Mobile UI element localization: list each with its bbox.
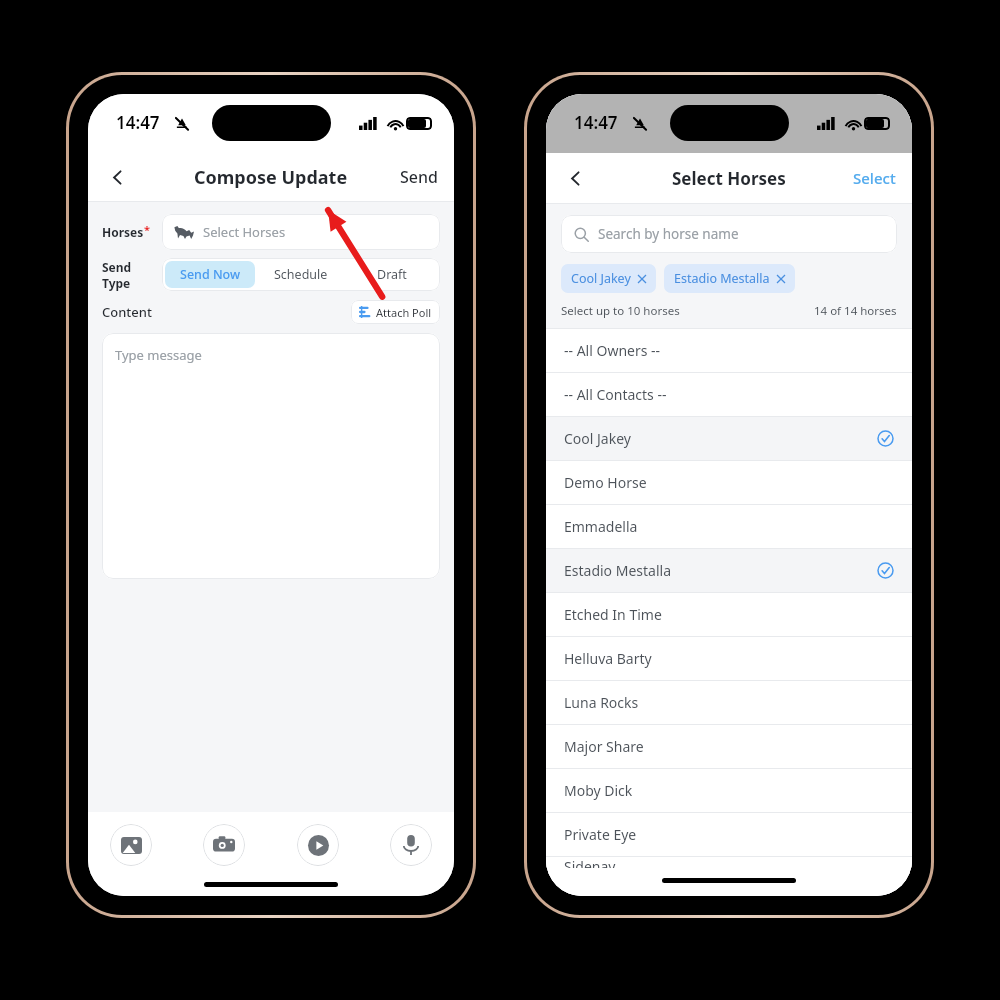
button[interactable]: Estadio Mestalla bbox=[546, 549, 912, 592]
button[interactable]: Etched In Time bbox=[546, 593, 912, 636]
button[interactable]: -- All Owners -- bbox=[546, 329, 912, 372]
staticText: Etched In Time bbox=[564, 605, 662, 624]
button[interactable]: Demo Horse bbox=[546, 461, 912, 504]
staticText: Send Type bbox=[102, 259, 162, 291]
button[interactable]: Emmadella bbox=[546, 505, 912, 548]
staticText: Sidenay bbox=[564, 857, 616, 868]
staticText: Cool Jakey bbox=[564, 429, 631, 448]
staticText: Select bbox=[853, 168, 896, 188]
staticText: Draft bbox=[377, 266, 407, 283]
button[interactable]: Gallery bbox=[110, 824, 152, 866]
staticText: Luna Rocks bbox=[564, 693, 639, 712]
button[interactable]: Draft bbox=[346, 261, 437, 288]
staticText: * bbox=[144, 222, 150, 237]
button[interactable]: Select Horses bbox=[162, 214, 440, 250]
staticText: Demo Horse bbox=[564, 473, 647, 492]
staticText: Horses bbox=[102, 224, 144, 240]
staticText: Type message bbox=[115, 346, 202, 364]
staticText: Helluva Barty bbox=[564, 649, 652, 668]
button[interactable]: Moby Dick bbox=[546, 769, 912, 812]
button[interactable]: Schedule bbox=[255, 261, 346, 288]
button[interactable]: Helluva Barty bbox=[546, 637, 912, 680]
staticText: Estadio Mestalla bbox=[674, 270, 770, 287]
staticText: Estadio Mestalla bbox=[564, 561, 672, 580]
staticText: Select Horses bbox=[672, 167, 786, 190]
button[interactable]: Send bbox=[390, 158, 448, 196]
staticText: Send bbox=[400, 166, 438, 188]
button[interactable]: Private Eye bbox=[546, 813, 912, 856]
staticText: -- All Owners -- bbox=[564, 341, 661, 360]
button[interactable]: Back bbox=[98, 158, 136, 196]
staticText: Send Now bbox=[180, 266, 241, 283]
button[interactable]: Camera bbox=[203, 824, 245, 866]
staticText: 14:47 bbox=[574, 111, 618, 134]
staticText: Major Share bbox=[564, 737, 644, 756]
staticText: Select Horses bbox=[203, 223, 286, 241]
button[interactable]: Search by horse name bbox=[561, 215, 897, 253]
staticText: Moby Dick bbox=[564, 781, 633, 800]
staticText: Schedule bbox=[274, 266, 328, 283]
button[interactable]: Luna Rocks bbox=[546, 681, 912, 724]
staticText: Attach Poll bbox=[376, 305, 432, 320]
button[interactable]: Major Share bbox=[546, 725, 912, 768]
staticText: Compose Update bbox=[194, 165, 348, 190]
staticText: 14:47 bbox=[116, 111, 160, 134]
button[interactable]: Select bbox=[843, 160, 906, 196]
staticText: Select up to 10 horses bbox=[561, 303, 680, 319]
button[interactable]: Video bbox=[297, 824, 339, 866]
button[interactable]: Attach Poll bbox=[351, 300, 440, 324]
button[interactable]: -- All Contacts -- bbox=[546, 373, 912, 416]
button[interactable]: Cool Jakey bbox=[561, 264, 656, 293]
staticText: Emmadella bbox=[564, 517, 638, 536]
staticText: Cool Jakey bbox=[571, 270, 631, 287]
button[interactable]: Estadio Mestalla bbox=[664, 264, 795, 293]
staticText: -- All Contacts -- bbox=[564, 385, 667, 404]
button[interactable]: Back bbox=[556, 159, 594, 197]
button[interactable]: Cool Jakey bbox=[546, 417, 912, 460]
button[interactable]: Type message bbox=[102, 333, 440, 579]
staticText: Private Eye bbox=[564, 825, 637, 844]
staticText: Content bbox=[102, 303, 152, 321]
staticText: Search by horse name bbox=[598, 225, 739, 243]
button[interactable]: Send Now bbox=[165, 261, 255, 288]
button[interactable]: Record audio bbox=[390, 824, 432, 866]
button[interactable]: Sidenay bbox=[546, 857, 912, 868]
staticText: 14 of 14 horses bbox=[814, 303, 897, 319]
